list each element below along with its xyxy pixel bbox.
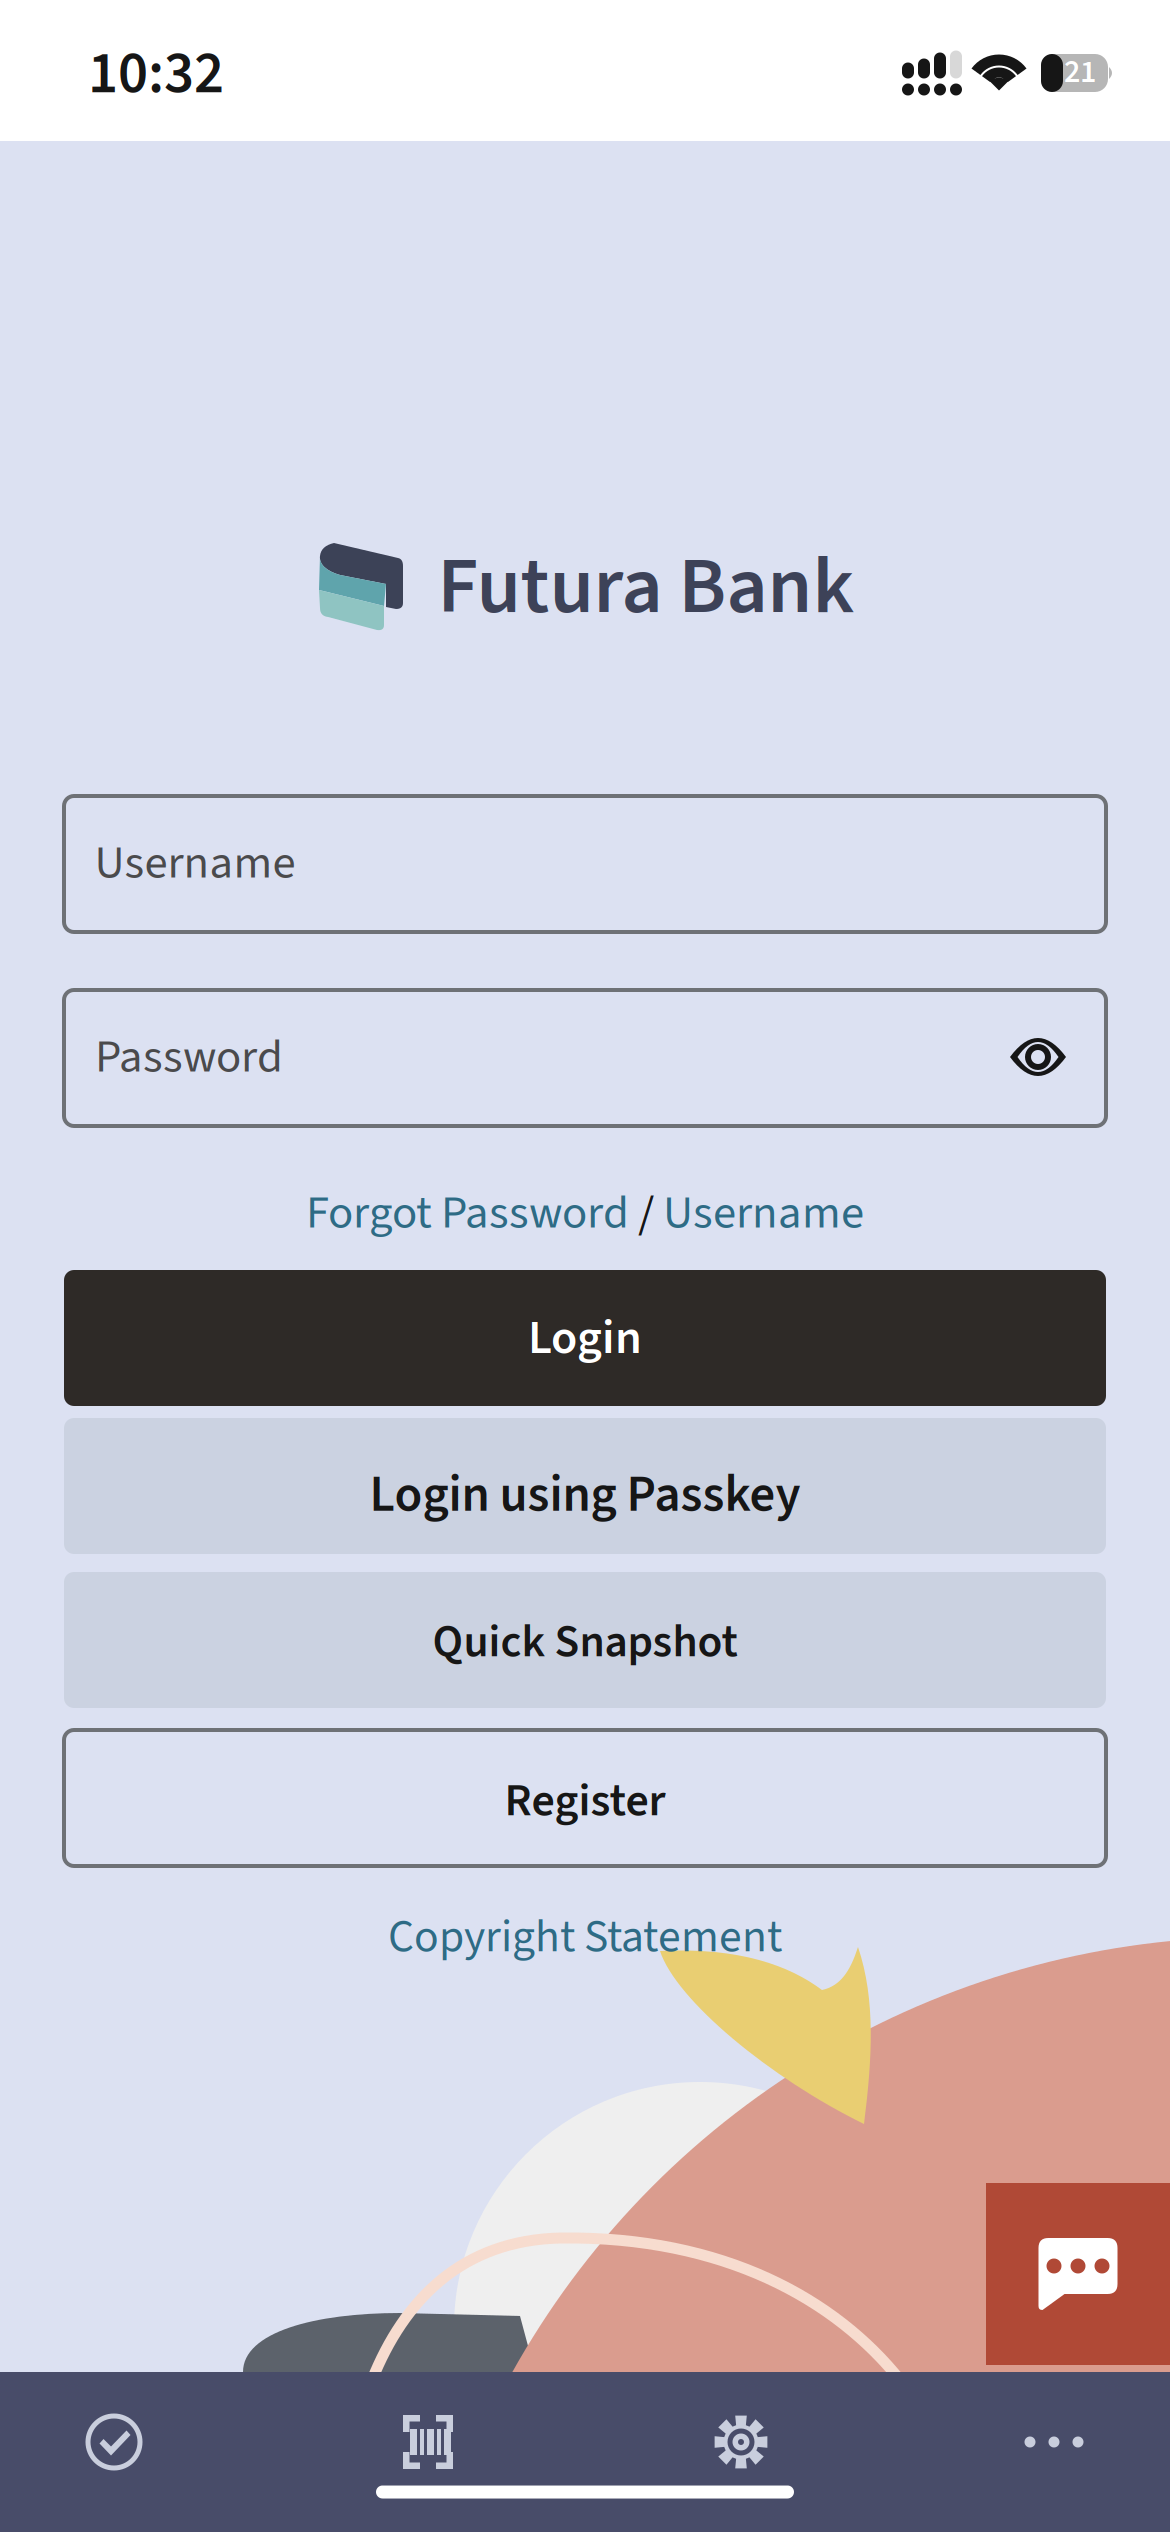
staticText: 10:32 [88,32,224,116]
staticText: Username [94,830,295,896]
button[interactable]: Approvals [34,2382,194,2502]
staticText: Futura Bank [437,530,854,644]
button[interactable]: Login [64,1270,1106,1406]
staticText: Username [663,1180,864,1246]
button[interactable]: Register [64,1730,1106,1866]
button[interactable]: Scan [348,2382,508,2502]
button[interactable]: Username [663,1180,864,1246]
button[interactable]: Forgot Password [306,1180,629,1246]
staticText: Password [95,1024,283,1090]
button[interactable]: Copyright Statement [388,1904,782,1969]
staticText: Forgot Password [306,1180,629,1246]
staticText: Register [504,1768,665,1834]
button[interactable]: Settings [661,2382,821,2502]
button[interactable]: More [974,2382,1134,2502]
staticText: Login using Passkey [369,1459,800,1531]
staticText: Copyright Statement [388,1904,782,1969]
staticText: / [629,1180,663,1246]
button[interactable]: Username [64,796,1106,932]
button[interactable]: Quick Snapshot [64,1572,1106,1708]
button[interactable]: Password [64,990,1106,1126]
staticText: Quick Snapshot [432,1610,737,1674]
button[interactable]: Chat [986,2183,1170,2365]
button[interactable]: Login using Passkey [64,1418,1106,1554]
staticText: Login [528,1304,642,1372]
staticText: 21 [1064,49,1096,95]
button[interactable]: Show password [1010,1037,1066,1077]
